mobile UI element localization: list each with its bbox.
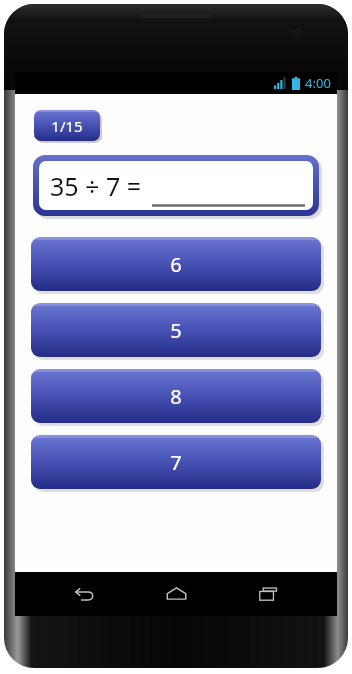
button[interactable]: 6 <box>31 237 321 291</box>
staticText: 4:00 <box>305 74 331 92</box>
staticText: 5 <box>170 317 182 344</box>
staticText: 1/15 <box>51 116 83 136</box>
staticText: 6 <box>170 251 182 278</box>
button[interactable]: 8 <box>31 369 321 423</box>
button[interactable]: Recent apps <box>246 572 290 616</box>
button[interactable]: Back <box>63 572 107 616</box>
button[interactable]: 7 <box>31 435 321 489</box>
button[interactable]: Home <box>154 572 198 616</box>
staticText: 8 <box>170 383 182 410</box>
button[interactable]: 5 <box>31 303 321 357</box>
staticText: 7 <box>170 449 182 476</box>
staticText: 35 ÷ 7 = <box>50 169 142 203</box>
button[interactable]: 1/15 <box>34 110 100 141</box>
